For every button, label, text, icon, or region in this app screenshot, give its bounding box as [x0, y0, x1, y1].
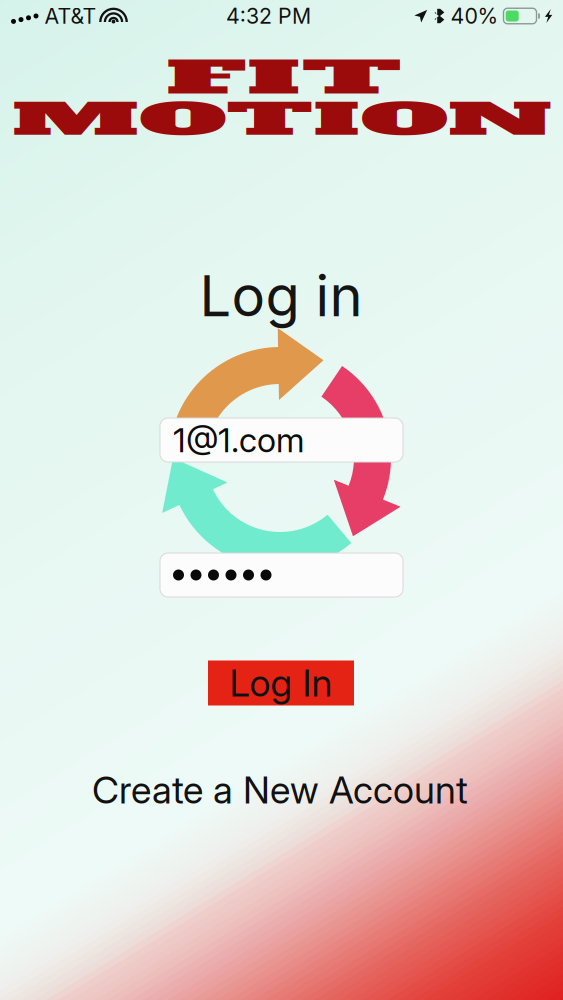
button[interactable] — [160, 553, 403, 597]
staticText: Log in — [199, 262, 362, 330]
button[interactable]: Create a New Account — [92, 767, 468, 813]
button[interactable]: 1@1.com — [160, 418, 403, 462]
staticText: 4:32 PM — [226, 3, 311, 29]
staticText: Create a New Account — [92, 767, 468, 813]
button[interactable]: Log In — [208, 660, 354, 705]
staticText: 1@1.com — [173, 420, 304, 460]
staticText: MOTION — [139, 80, 424, 160]
staticText: AT&T — [44, 3, 96, 29]
staticText: FIT — [230, 38, 338, 118]
staticText: Log In — [229, 660, 332, 706]
staticText: 40% — [450, 3, 498, 29]
